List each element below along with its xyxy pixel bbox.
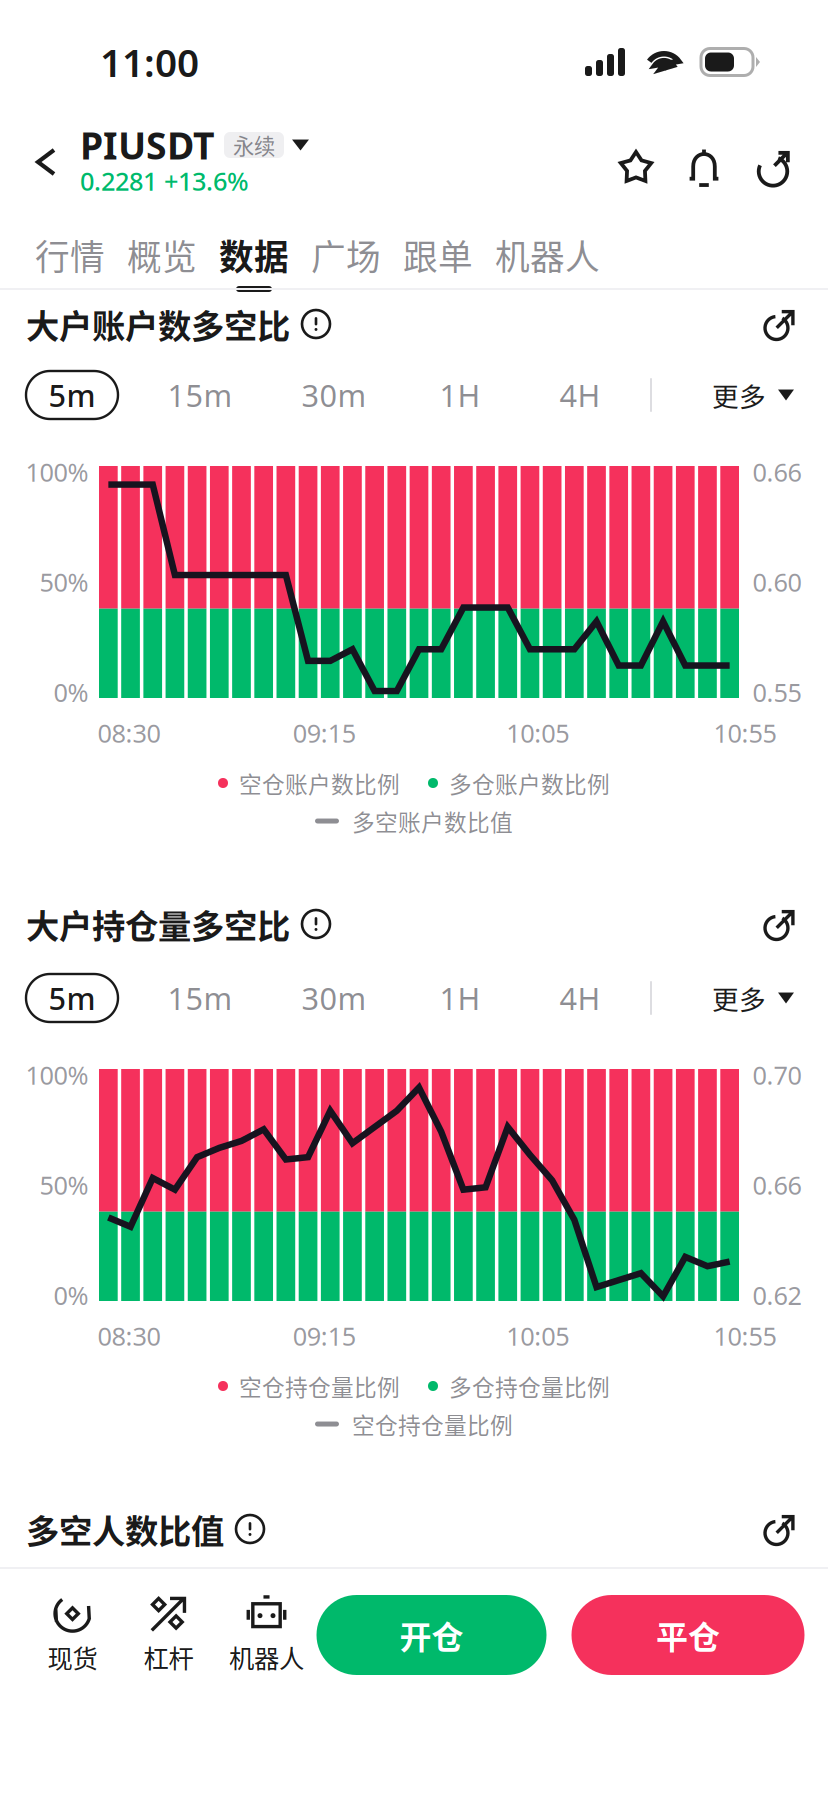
button[interactable]: 概览 xyxy=(116,229,208,292)
staticText: 100% xyxy=(25,1058,88,1092)
button[interactable]: Price alert xyxy=(671,134,737,201)
staticText: 50% xyxy=(39,1168,88,1202)
staticText: 数据 xyxy=(219,230,289,280)
button[interactable]: 15m xyxy=(154,371,246,419)
button[interactable]: 4H xyxy=(543,371,617,419)
staticText: 09:15 xyxy=(293,716,356,750)
button[interactable]: 4H xyxy=(543,974,617,1022)
staticText: 机器人 xyxy=(495,230,600,280)
button[interactable]: 5m xyxy=(26,974,118,1022)
staticText: 1H xyxy=(439,375,480,415)
button[interactable]: 更多 xyxy=(712,974,794,1022)
staticText: 行情 xyxy=(35,230,105,280)
button[interactable]: 1H xyxy=(423,371,497,419)
staticText: 09:15 xyxy=(293,1319,356,1353)
staticText: 更多 xyxy=(712,979,766,1017)
staticText: 杠杆 xyxy=(143,1639,193,1675)
staticText: PIUSDT xyxy=(80,120,215,170)
staticText: 跟单 xyxy=(403,230,473,280)
button[interactable]: 数据 xyxy=(208,229,300,292)
staticText: 10:55 xyxy=(713,716,776,750)
staticText: 大户持仓量多空比 xyxy=(26,900,290,948)
staticText: 机器人 xyxy=(229,1639,304,1675)
staticText: 更多 xyxy=(712,376,766,414)
staticText: 08:30 xyxy=(97,716,160,750)
button[interactable]: 15m xyxy=(154,974,246,1022)
staticText: 0.2281 +13.6% xyxy=(80,164,249,198)
button[interactable]: 5m xyxy=(26,371,118,419)
button[interactable]: Open full screen chart xyxy=(751,294,810,353)
staticText: 100% xyxy=(25,455,88,489)
button[interactable]: 平仓 xyxy=(571,1595,804,1675)
staticText: 50% xyxy=(39,565,88,599)
staticText: 1H xyxy=(439,978,480,1018)
staticText: 10:05 xyxy=(506,716,569,750)
button[interactable]: 现货 xyxy=(24,1595,120,1675)
button[interactable]: Open full screen chart xyxy=(751,894,810,953)
button[interactable]: 杠杆 xyxy=(120,1595,216,1675)
staticText: 15m xyxy=(167,978,232,1018)
staticText: 0.66 xyxy=(752,455,801,489)
button[interactable]: 机器人 xyxy=(484,229,611,292)
button[interactable]: Open full screen chart xyxy=(751,1499,810,1558)
button[interactable]: 行情 xyxy=(24,229,116,292)
button[interactable]: 更多 xyxy=(712,371,794,419)
staticText: 空仓持仓量比例 xyxy=(239,1370,400,1402)
button[interactable]: Add to favorites xyxy=(601,134,671,202)
staticText: 30m xyxy=(301,978,366,1018)
staticText: 08:30 xyxy=(97,1319,160,1353)
staticText: 5m xyxy=(48,375,95,415)
button[interactable]: 跟单 xyxy=(392,229,484,292)
button[interactable]: Share xyxy=(737,134,790,202)
staticText: 广场 xyxy=(311,230,381,280)
button[interactable]: 30m xyxy=(288,974,380,1022)
button[interactable]: 1H xyxy=(423,974,497,1022)
staticText: 多仓账户数比例 xyxy=(449,767,610,799)
staticText: 概览 xyxy=(127,230,197,280)
staticText: 30m xyxy=(301,375,366,415)
staticText: 多空账户数比值 xyxy=(352,805,513,837)
staticText: 0.62 xyxy=(752,1278,801,1312)
button[interactable]: 30m xyxy=(288,371,380,419)
staticText: 0.70 xyxy=(752,1058,801,1092)
staticText: 0.66 xyxy=(752,1168,801,1202)
staticText: 4H xyxy=(559,978,600,1018)
staticText: 永续 xyxy=(233,130,275,160)
staticText: 0% xyxy=(53,675,88,709)
button[interactable]: Back xyxy=(0,124,80,188)
staticText: 4H xyxy=(559,375,600,415)
staticText: 多空人数比值 xyxy=(26,1505,224,1553)
staticText: 0.60 xyxy=(752,565,801,599)
staticText: 多仓持仓量比例 xyxy=(449,1370,610,1402)
staticText: 开仓 xyxy=(399,1612,463,1658)
staticText: 15m xyxy=(167,375,232,415)
staticText: 空仓持仓量比例 xyxy=(352,1408,513,1440)
staticText: 10:05 xyxy=(506,1319,569,1353)
button[interactable]: 开仓 xyxy=(316,1595,546,1675)
staticText: 平仓 xyxy=(656,1612,720,1658)
button[interactable]: 广场 xyxy=(300,229,392,292)
staticText: 大户账户数多空比 xyxy=(26,300,290,348)
staticText: 5m xyxy=(48,978,95,1018)
staticText: 空仓账户数比例 xyxy=(239,767,400,799)
button[interactable]: 机器人 xyxy=(216,1595,316,1675)
staticText: 现货 xyxy=(47,1639,97,1675)
staticText: 11:00 xyxy=(100,36,199,88)
staticText: 0% xyxy=(53,1278,88,1312)
staticText: 10:55 xyxy=(713,1319,776,1353)
staticText: 0.55 xyxy=(752,675,801,709)
